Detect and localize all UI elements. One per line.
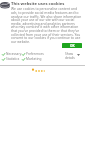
staticText: Statistics bbox=[6, 57, 20, 61]
button[interactable]: OK bbox=[62, 43, 82, 48]
staticText: about your use of our site with our soci… bbox=[11, 17, 75, 21]
staticText: Necessary bbox=[6, 52, 22, 56]
staticText: collected from your use of their service… bbox=[11, 32, 81, 36]
other: Cookie bbox=[0, 1, 10, 10]
button[interactable]: Necessary bbox=[2, 52, 22, 56]
staticText: that you've provided to them or that the… bbox=[11, 28, 80, 32]
staticText: ads, to provide social media features an… bbox=[11, 10, 79, 14]
button[interactable]: Show details bbox=[64, 52, 82, 61]
staticText: We use cookies to personalise content an… bbox=[11, 6, 77, 10]
button[interactable]: Statistics bbox=[2, 57, 20, 61]
button[interactable]: Preferences bbox=[22, 52, 44, 56]
staticText: who may combine it with other informatio… bbox=[11, 24, 79, 28]
staticText: analyse our traffic. We also share infor… bbox=[11, 14, 82, 18]
staticText: consent to our cookies if you continue t… bbox=[11, 35, 81, 39]
staticText: Show details bbox=[65, 52, 75, 60]
staticText: media, advertising and analytics partner… bbox=[11, 21, 75, 25]
staticText: Marketing bbox=[26, 57, 42, 61]
staticText: Preferences bbox=[26, 52, 44, 56]
staticText: OK bbox=[70, 44, 75, 48]
button[interactable]: Marketing bbox=[22, 57, 42, 61]
staticText: This website uses cookies bbox=[11, 1, 65, 7]
staticText: our website. bbox=[11, 39, 31, 43]
